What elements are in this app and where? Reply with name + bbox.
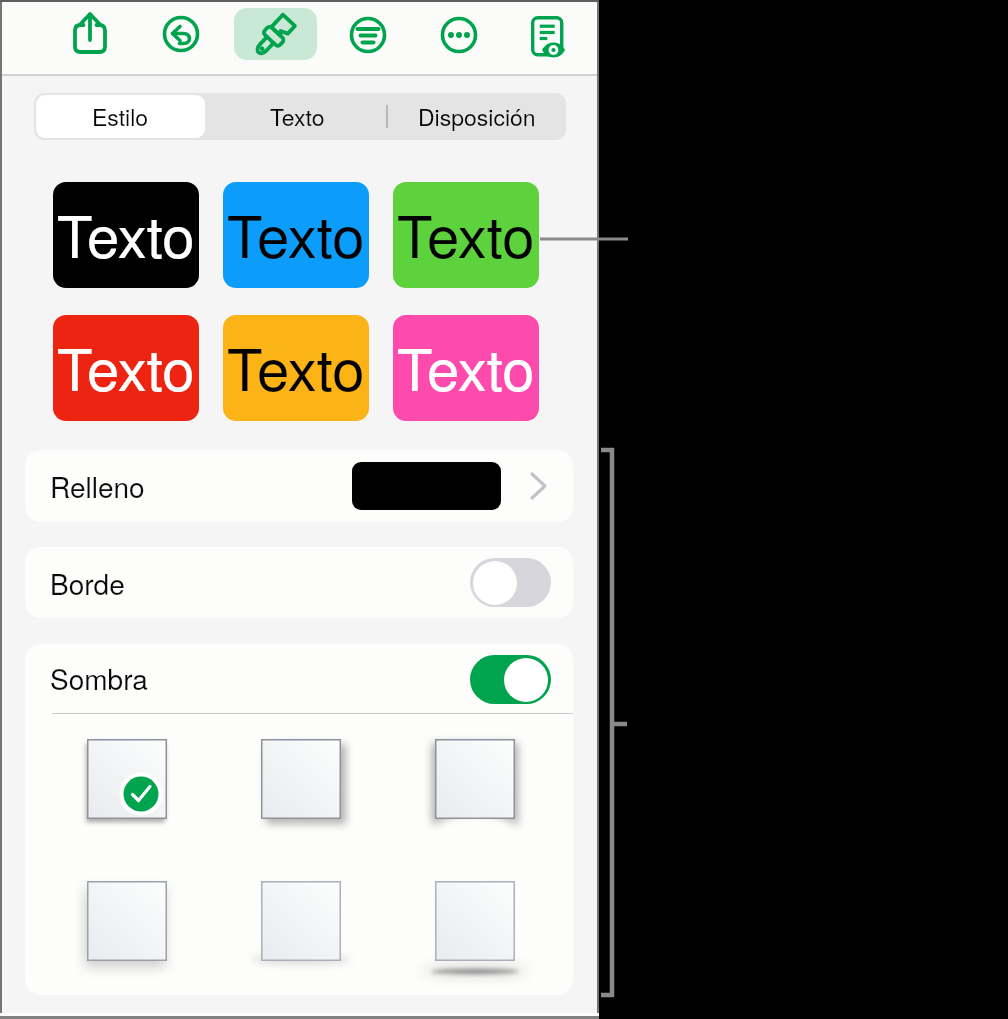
button[interactable]: More options (423, 6, 495, 64)
staticText: Texto (227, 191, 365, 274)
button[interactable]: Texto (53, 182, 199, 288)
button[interactable]: Texto (223, 315, 369, 421)
staticText: Texto (397, 191, 535, 274)
button[interactable]: Shadow style 2 (236, 723, 366, 849)
staticText: Disposición (418, 100, 536, 133)
button[interactable]: Undo (145, 5, 217, 63)
button[interactable]: Share (54, 5, 126, 63)
staticText: Texto (270, 100, 325, 133)
staticText: Relleno (50, 466, 145, 506)
button[interactable]: Disposición (389, 95, 564, 138)
staticText: Borde (50, 563, 125, 603)
staticText: Texto (397, 324, 535, 407)
button[interactable]: Shadow style 4 (62, 865, 192, 991)
button[interactable]: Switch off (470, 558, 551, 607)
button[interactable]: Shadow style 3 (410, 723, 540, 849)
staticText: Sombra (50, 658, 148, 698)
staticText: Estilo (92, 100, 149, 133)
button[interactable]: Shadow style 5 (236, 865, 366, 991)
button[interactable]: Shadow style 6 (410, 865, 540, 991)
button[interactable]: Preview (510, 6, 582, 64)
button[interactable]: Texto (393, 315, 539, 421)
button[interactable]: Shadow style 1 (62, 723, 192, 849)
button[interactable]: Format (234, 8, 317, 60)
button[interactable]: Paragraph (332, 6, 404, 64)
button[interactable]: Switch on (470, 655, 551, 704)
button[interactable]: Texto (223, 182, 369, 288)
button[interactable]: Estilo (36, 95, 205, 138)
staticText: Texto (57, 324, 195, 407)
button[interactable]: Texto (393, 182, 539, 288)
staticText: Texto (227, 324, 365, 407)
button[interactable]: Relleno (25, 450, 573, 522)
staticText: Texto (57, 191, 195, 274)
button[interactable]: Texto (53, 315, 199, 421)
button[interactable]: Texto (209, 95, 385, 138)
